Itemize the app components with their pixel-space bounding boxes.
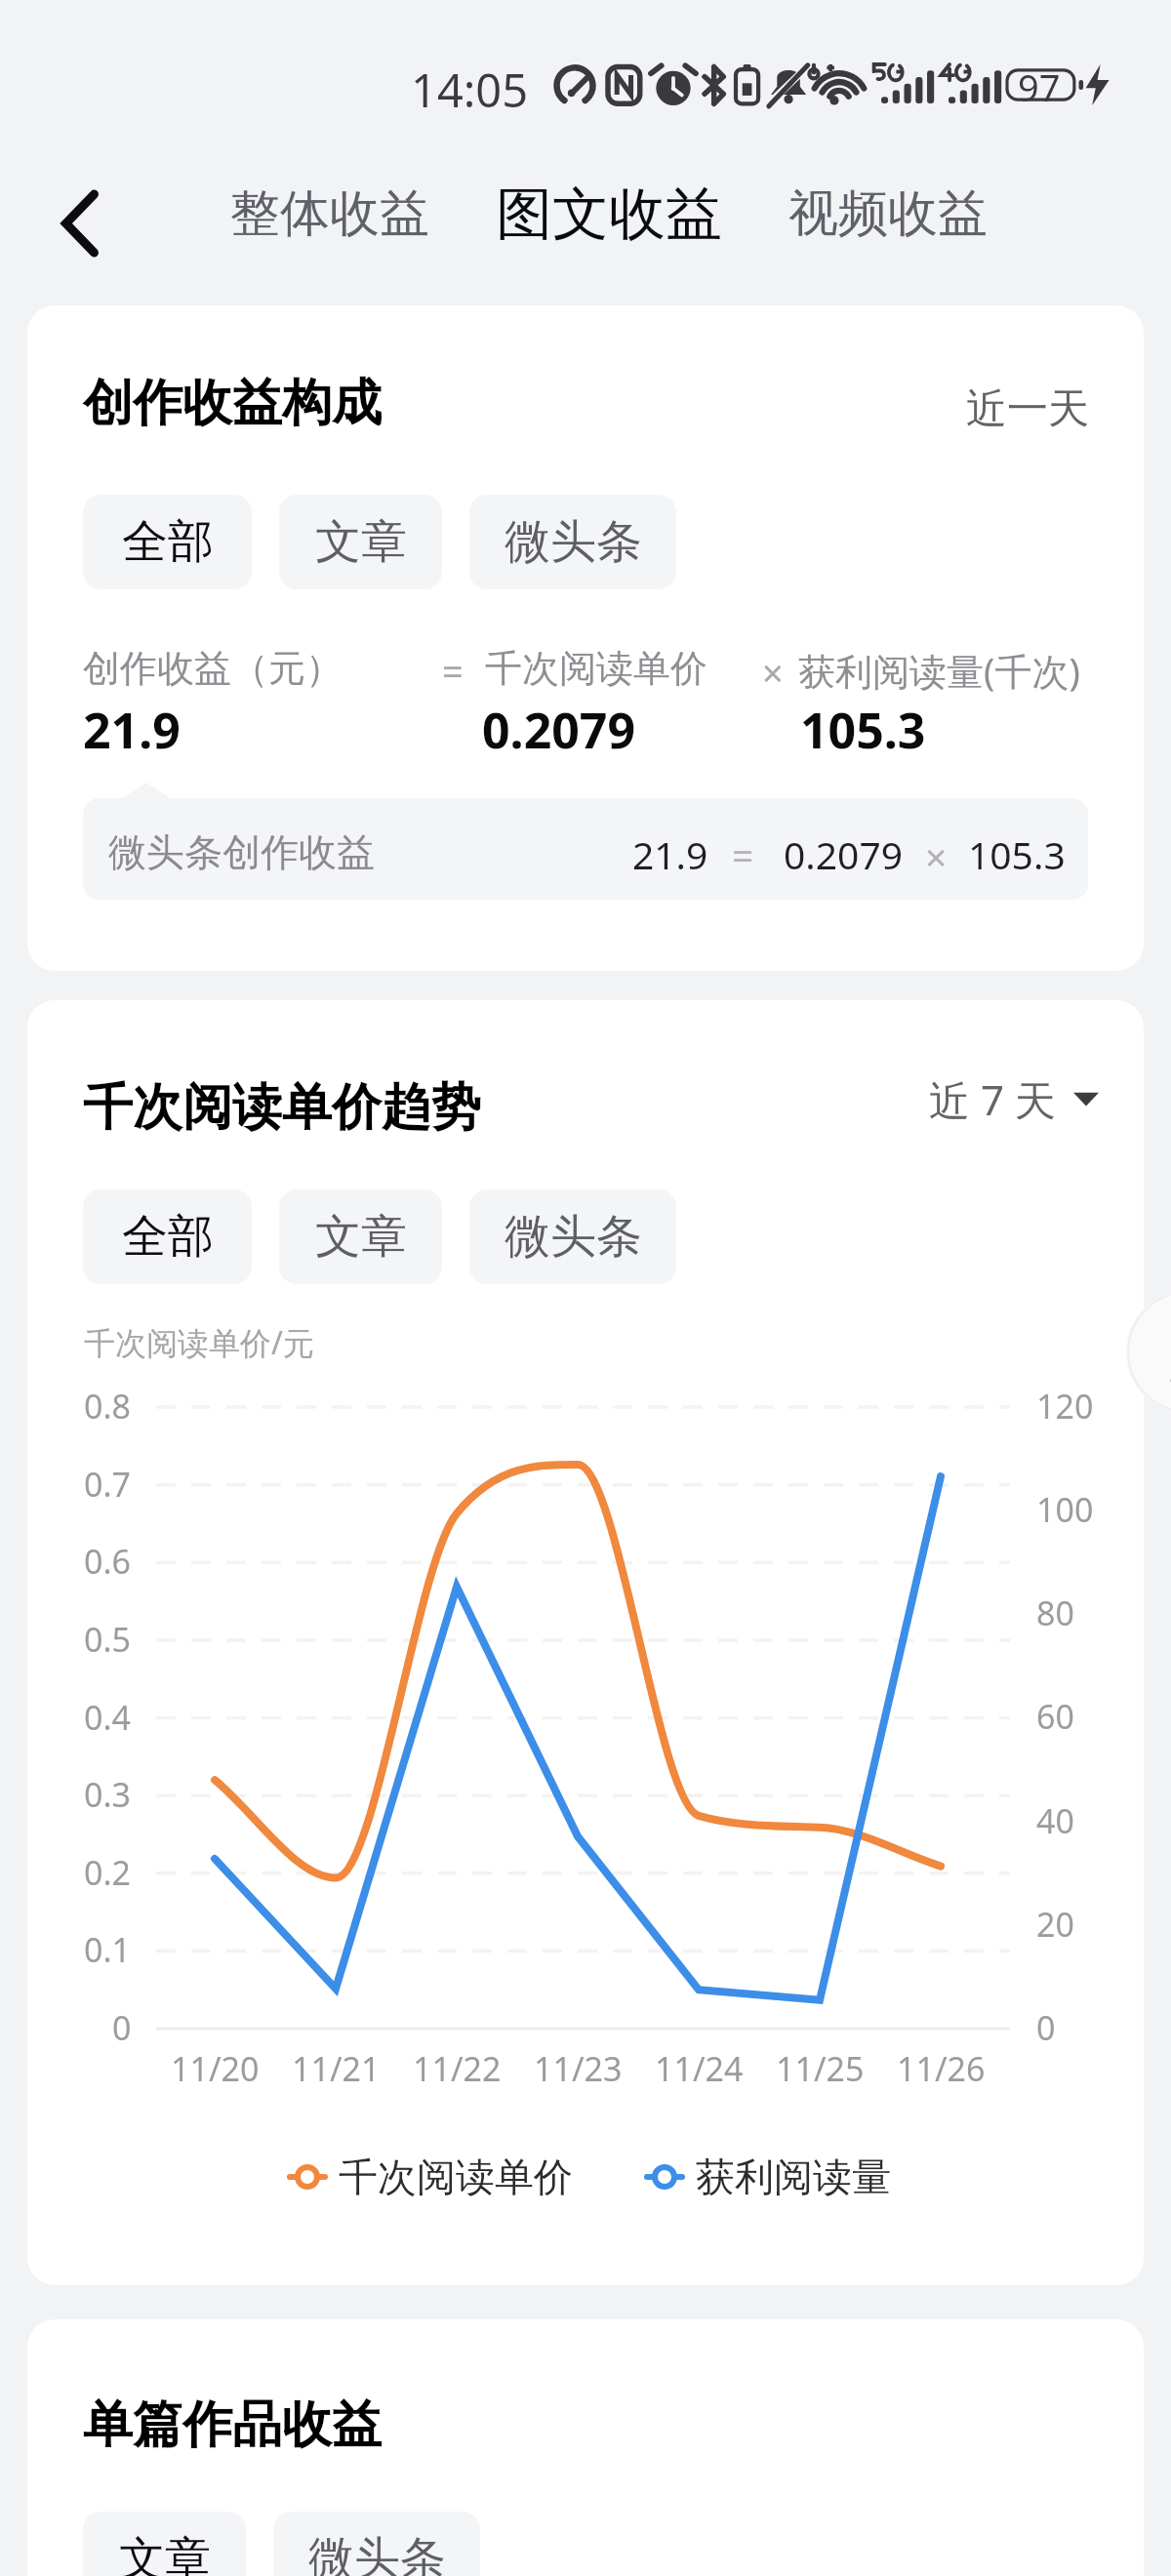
staticText: = bbox=[442, 645, 464, 696]
staticText: 40 bbox=[1036, 1798, 1074, 1843]
staticText: 100 bbox=[1036, 1487, 1094, 1532]
button[interactable]: 全部 bbox=[83, 495, 252, 589]
staticText: 0.7 bbox=[84, 1462, 132, 1507]
staticText: 11/24 bbox=[655, 2046, 744, 2091]
button[interactable]: 获利阅读量 bbox=[647, 2153, 891, 2201]
staticText: 创作收益构成 bbox=[83, 372, 382, 434]
button[interactable]: 微头条 bbox=[469, 1189, 676, 1284]
button[interactable]: 微头条 bbox=[469, 495, 676, 589]
staticText: 11/25 bbox=[776, 2046, 865, 2091]
button[interactable]: 整体收益 bbox=[221, 167, 439, 261]
staticText: 11/22 bbox=[413, 2046, 502, 2091]
staticText: 单篇作品收益 bbox=[83, 2394, 382, 2456]
staticText: 微头条 bbox=[505, 513, 642, 571]
staticText: 0.3 bbox=[84, 1772, 132, 1817]
button[interactable]: 微头条 bbox=[273, 2512, 480, 2576]
staticText: 全部 bbox=[122, 1208, 214, 1266]
staticText: 11/23 bbox=[534, 2046, 623, 2091]
staticText: 获利阅读量 bbox=[696, 2153, 891, 2201]
staticText: 文章 bbox=[315, 513, 407, 571]
staticText: 0.5 bbox=[84, 1617, 132, 1662]
staticText: 0.2 bbox=[84, 1850, 132, 1895]
staticText: × bbox=[762, 647, 784, 698]
staticText: 0 bbox=[112, 2005, 132, 2050]
staticText: 创作收益（元） bbox=[83, 645, 343, 692]
staticText: 0.2079 bbox=[482, 697, 636, 763]
staticText: 0.4 bbox=[84, 1695, 132, 1740]
staticText: 11/20 bbox=[171, 2046, 260, 2091]
staticText: 千次阅读单价/元 bbox=[84, 1321, 314, 1364]
button[interactable]: 图文收益 bbox=[486, 173, 732, 256]
staticText: 千次阅读单价 bbox=[339, 2153, 573, 2201]
button[interactable]: Back bbox=[33, 168, 125, 260]
staticText: 11/26 bbox=[897, 2046, 986, 2091]
staticText: 80 bbox=[1036, 1590, 1074, 1635]
staticText: 微头条 bbox=[308, 2530, 446, 2576]
staticText: 21.9 bbox=[632, 828, 708, 880]
button[interactable]: 千次阅读单价 bbox=[290, 2153, 573, 2201]
staticText: 11/21 bbox=[292, 2046, 381, 2091]
staticText: 微头条 bbox=[505, 1208, 642, 1266]
button[interactable]: 微头条创作收益 bbox=[83, 798, 1088, 900]
button[interactable]: 全部 bbox=[83, 1189, 252, 1284]
staticText: 图文收益 bbox=[496, 179, 722, 250]
button[interactable]: 文章 bbox=[83, 2512, 246, 2576]
staticText: 视频收益 bbox=[788, 182, 988, 245]
staticText: 文章 bbox=[315, 1208, 407, 1266]
staticText: 21.9 bbox=[83, 697, 181, 763]
staticText: 文章 bbox=[119, 2530, 211, 2576]
staticText: 97 bbox=[1018, 61, 1061, 112]
staticText: 0.6 bbox=[84, 1539, 132, 1584]
button[interactable]: 近一天 bbox=[966, 383, 1089, 435]
staticText: 105.3 bbox=[968, 828, 1066, 880]
staticText: = bbox=[732, 828, 754, 880]
staticText: 60 bbox=[1036, 1694, 1074, 1739]
staticText: 近一天 bbox=[966, 383, 1089, 435]
button[interactable]: Feedback bbox=[1126, 1290, 1171, 1414]
staticText: 整体收益 bbox=[230, 182, 429, 245]
staticText: × bbox=[925, 830, 948, 882]
staticText: 120 bbox=[1036, 1384, 1094, 1429]
staticText: 千次阅读单价 bbox=[485, 645, 707, 692]
staticText: 千次阅读单价趋势 bbox=[83, 1076, 481, 1139]
staticText: 14:05 bbox=[411, 59, 529, 121]
staticText: 20 bbox=[1036, 1902, 1074, 1947]
staticText: 105.3 bbox=[800, 697, 926, 763]
button[interactable]: 视频收益 bbox=[779, 167, 997, 261]
button[interactable]: 文章 bbox=[279, 495, 442, 589]
staticText: 0.8 bbox=[84, 1384, 132, 1429]
staticText: 0 bbox=[1036, 2005, 1056, 2050]
staticText: 近 7 天 bbox=[929, 1071, 1056, 1127]
staticText: 微头条创作收益 bbox=[108, 828, 375, 876]
staticText: 获利阅读量(千次) bbox=[798, 645, 1080, 696]
staticText: 全部 bbox=[122, 513, 214, 571]
button[interactable]: 文章 bbox=[279, 1189, 442, 1284]
staticText: 0.1 bbox=[84, 1927, 132, 1972]
button[interactable]: 近 7 天 bbox=[929, 1071, 1099, 1127]
staticText: 0.2079 bbox=[784, 828, 903, 880]
